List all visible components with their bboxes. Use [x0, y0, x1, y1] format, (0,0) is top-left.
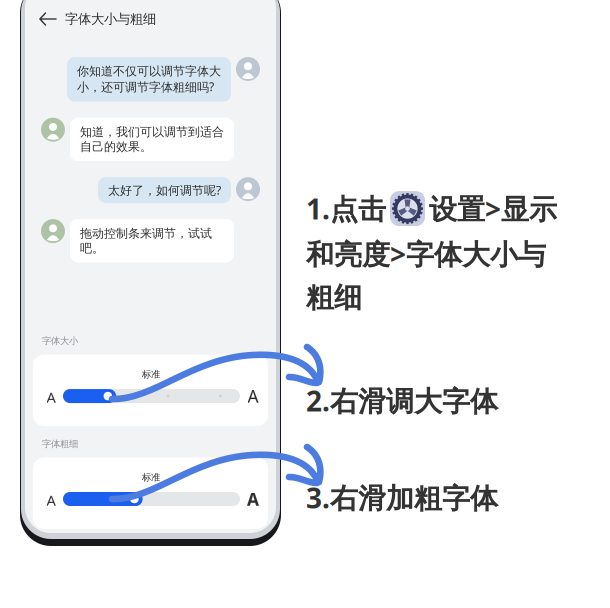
- staticText: 拖动控制条来调节，试试吧。: [80, 226, 212, 256]
- staticText: 1.点击: [306, 190, 386, 227]
- staticText: 你知道不仅可以调节字体大小，还可调节字体粗细吗?: [77, 64, 221, 95]
- staticText: A: [247, 385, 258, 408]
- staticText: 太好了，如何调节呢?: [108, 182, 221, 198]
- staticText: 3.右滑加粗字体: [306, 479, 498, 516]
- staticText: A: [46, 387, 55, 407]
- staticText: 字体大小: [42, 335, 78, 347]
- staticText: 标准: [142, 471, 160, 483]
- staticText: 设置>显示: [429, 190, 557, 227]
- staticText: 粗细: [306, 280, 362, 315]
- staticText: 字体大小与粗细: [65, 11, 156, 27]
- staticText: A: [46, 490, 55, 510]
- staticText: 和亮度>字体大小与: [306, 235, 546, 272]
- staticText: 2.右滑调大字体: [306, 382, 498, 419]
- button[interactable]: Back: [31, 3, 65, 35]
- staticText: 标准: [142, 369, 160, 380]
- staticText: 字体粗细: [42, 438, 78, 450]
- staticText: A: [247, 487, 259, 510]
- staticText: 知道，我们可以调节到适合自己的效果。: [80, 125, 224, 154]
